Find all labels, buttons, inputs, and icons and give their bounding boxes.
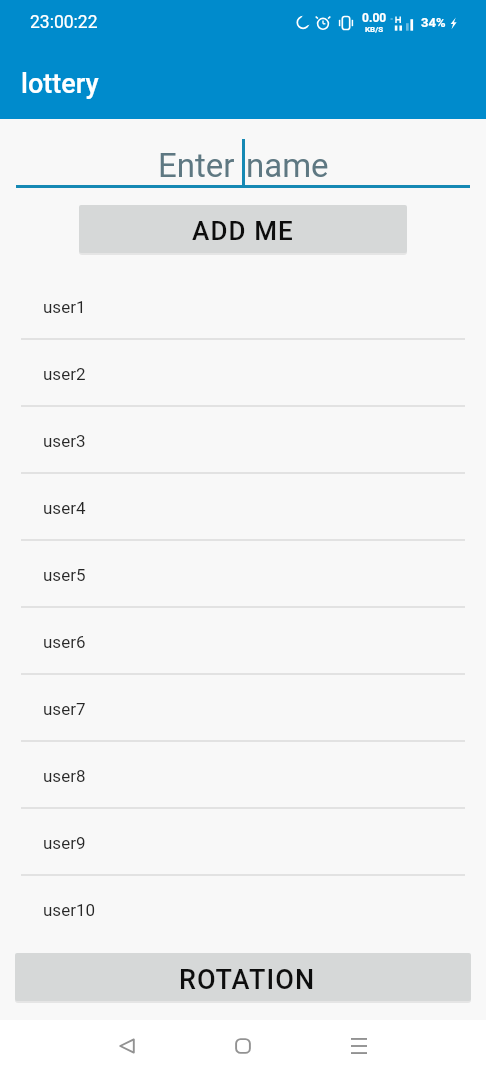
- staticText: user8: [43, 766, 86, 786]
- staticText: 23:00:22: [30, 12, 98, 33]
- staticText: user3: [43, 431, 86, 451]
- staticText: user5: [43, 565, 86, 585]
- staticText: 0.00: [362, 11, 387, 25]
- button[interactable]: Home: [217, 1020, 269, 1072]
- staticText: ROTATION: [179, 964, 316, 996]
- button[interactable]: ADD ME: [79, 205, 407, 253]
- button[interactable]: user3: [0, 407, 486, 474]
- button[interactable]: user8: [0, 742, 486, 809]
- staticText: user4: [43, 498, 86, 518]
- staticText: user9: [43, 833, 86, 853]
- staticText: KB/S: [365, 25, 384, 34]
- staticText: user6: [43, 632, 86, 652]
- button[interactable]: Back: [101, 1020, 153, 1072]
- staticText: user10: [43, 900, 96, 920]
- staticText: name: [246, 146, 329, 185]
- button[interactable]: user9: [0, 809, 486, 876]
- staticText: lottery: [21, 68, 99, 100]
- staticText: ADD ME: [192, 216, 294, 246]
- button[interactable]: user1: [0, 273, 486, 340]
- staticText: user1: [43, 297, 86, 317]
- button[interactable]: user6: [0, 608, 486, 675]
- button[interactable]: ROTATION: [15, 953, 471, 1001]
- staticText: user2: [43, 364, 86, 384]
- staticText: Enter: [158, 146, 235, 185]
- button[interactable]: user4: [0, 474, 486, 541]
- button[interactable]: user5: [0, 541, 486, 608]
- button[interactable]: user7: [0, 675, 486, 742]
- staticText: 34%: [421, 15, 446, 30]
- button[interactable]: Recent apps: [333, 1020, 385, 1072]
- button[interactable]: user10: [0, 876, 486, 943]
- staticText: user7: [43, 699, 86, 719]
- button[interactable]: user2: [0, 340, 486, 407]
